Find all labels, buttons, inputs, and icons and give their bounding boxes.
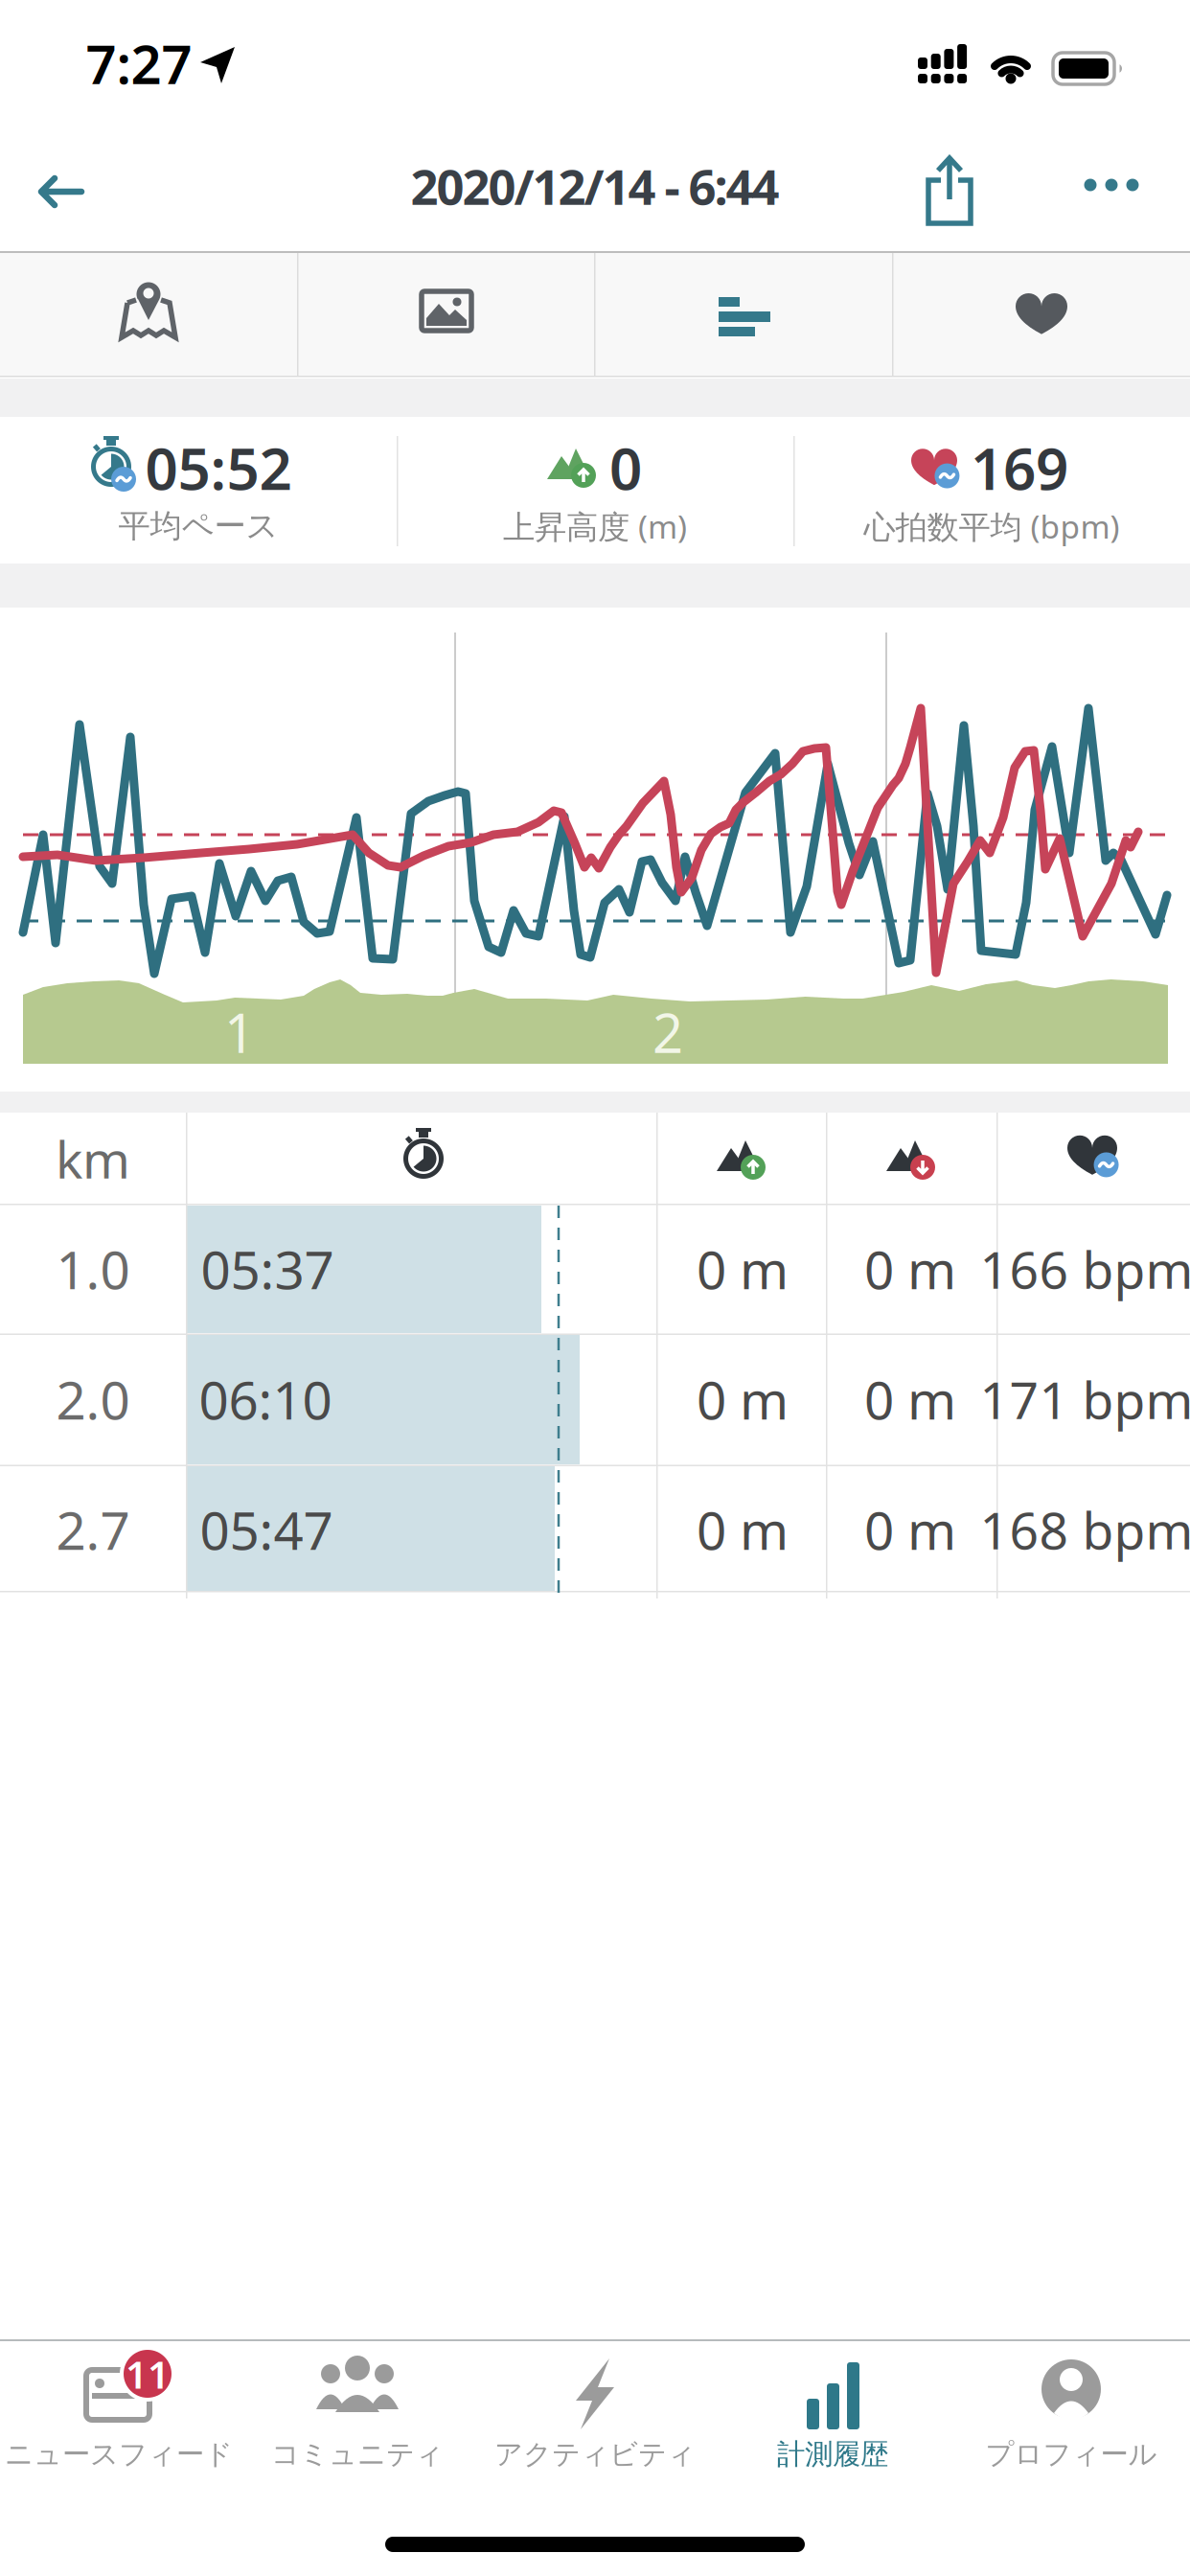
staticText: 0 m	[864, 1364, 956, 1434]
staticText: アクティビティ	[494, 2437, 696, 2472]
button[interactable]: Charts	[676, 253, 811, 376]
staticText: 0 m	[864, 1234, 956, 1304]
staticText: コミュニティ	[271, 2437, 444, 2472]
staticText: 05:52	[145, 430, 292, 506]
staticText: 上昇高度 (m)	[503, 505, 687, 547]
staticText: 2.0	[56, 1364, 130, 1434]
staticText: 心拍数平均 (bpm)	[864, 505, 1120, 547]
staticText: 171 bpm	[980, 1365, 1190, 1433]
staticText: 7:27	[86, 28, 192, 99]
staticText: 11	[126, 2348, 170, 2399]
staticText: 0 m	[864, 1495, 956, 1564]
button[interactable]: More	[1078, 147, 1145, 223]
staticText: 2.7	[56, 1495, 130, 1564]
staticText: 0 m	[697, 1495, 789, 1564]
staticText: 168 bpm	[980, 1496, 1190, 1563]
staticText: 2020/12/14 - 6:44	[411, 154, 779, 218]
staticText: 0 m	[697, 1234, 789, 1304]
staticText: 平均ペース	[118, 506, 278, 546]
staticText: 05:37	[201, 1234, 334, 1304]
button[interactable]: 計測履歴	[714, 2339, 951, 2473]
staticText: 06:10	[199, 1364, 332, 1434]
staticText: 0 m	[697, 1364, 789, 1434]
staticText: 計測履歴	[777, 2437, 888, 2472]
button[interactable]: アクティビティ	[476, 2339, 714, 2473]
button[interactable]: コミュニティ	[239, 2339, 476, 2473]
staticText: プロフィール	[985, 2437, 1157, 2472]
button[interactable]: Back	[34, 153, 110, 230]
button[interactable]: Heart rate	[974, 253, 1109, 376]
staticText: 169	[971, 430, 1068, 506]
button[interactable]: 11	[0, 2339, 238, 2473]
button[interactable]: Map	[81, 253, 216, 376]
staticText: 05:47	[200, 1495, 333, 1564]
staticText: 166 bpm	[980, 1235, 1190, 1303]
staticText: ニュースフィード	[5, 2437, 233, 2472]
button[interactable]: Photos	[379, 253, 514, 376]
staticText: 1	[224, 996, 255, 1068]
button[interactable]: プロフィール	[952, 2339, 1190, 2473]
staticText: 1.0	[56, 1234, 130, 1304]
button[interactable]: Share	[916, 149, 983, 232]
staticText: 0	[609, 430, 642, 506]
staticText: 2	[652, 996, 683, 1068]
staticText: km	[56, 1125, 130, 1193]
